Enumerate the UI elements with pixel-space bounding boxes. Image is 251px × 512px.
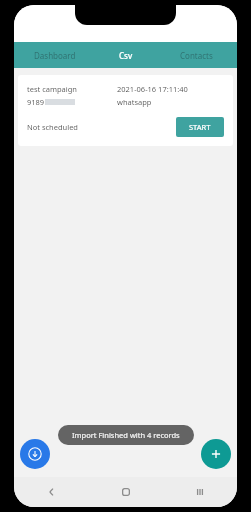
button[interactable]: Import CSV [20,439,50,469]
staticText: Dashboard [34,50,76,61]
button[interactable]: Add campaign [201,439,231,469]
staticText: whatsapp [117,97,152,107]
staticText: Not scheduled [27,122,78,132]
staticText: Csv [119,50,133,61]
staticText: START [189,122,211,132]
button[interactable]: Contacts [156,42,237,68]
button[interactable]: test campaign [18,75,233,146]
staticText: Import Finished with 4 records [72,430,180,440]
button[interactable]: Home [89,477,163,507]
button[interactable]: Back [14,477,89,507]
staticText: 2021-06-16 17:11:40 [117,84,188,94]
staticText: 9189 [27,97,45,107]
button[interactable]: Dashboard [14,42,95,68]
button[interactable]: Csv [95,42,156,68]
staticText: test campaign [27,84,78,94]
button[interactable]: Recents [163,477,237,507]
staticText: Contacts [180,50,213,61]
button[interactable]: START [176,117,224,137]
